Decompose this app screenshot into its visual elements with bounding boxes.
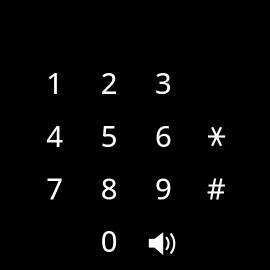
staticText: 7 (46, 168, 63, 208)
button[interactable]: Pound (189, 162, 243, 214)
button[interactable]: 3 (136, 57, 190, 109)
button[interactable]: 9 (136, 162, 190, 214)
button[interactable]: 0 (82, 215, 136, 267)
staticText: # (207, 168, 226, 208)
staticText: 8 (101, 168, 118, 208)
button[interactable]: 7 (28, 162, 82, 214)
staticText: 2 (101, 63, 118, 103)
button[interactable]: Speaker (136, 218, 190, 270)
staticText: 0 (101, 221, 118, 261)
button[interactable]: 2 (82, 57, 136, 109)
staticText: 6 (155, 115, 172, 155)
staticText: 5 (101, 115, 118, 155)
button[interactable]: 1 (28, 57, 82, 109)
button[interactable]: Star (189, 109, 243, 161)
staticText: 4 (46, 115, 63, 155)
button[interactable]: 4 (28, 109, 82, 161)
button[interactable]: 5 (82, 109, 136, 161)
staticText: 9 (155, 168, 172, 208)
staticText: 3 (155, 63, 172, 103)
button[interactable]: 8 (82, 162, 136, 214)
staticText: 1 (46, 63, 63, 103)
button[interactable]: 6 (136, 109, 190, 161)
